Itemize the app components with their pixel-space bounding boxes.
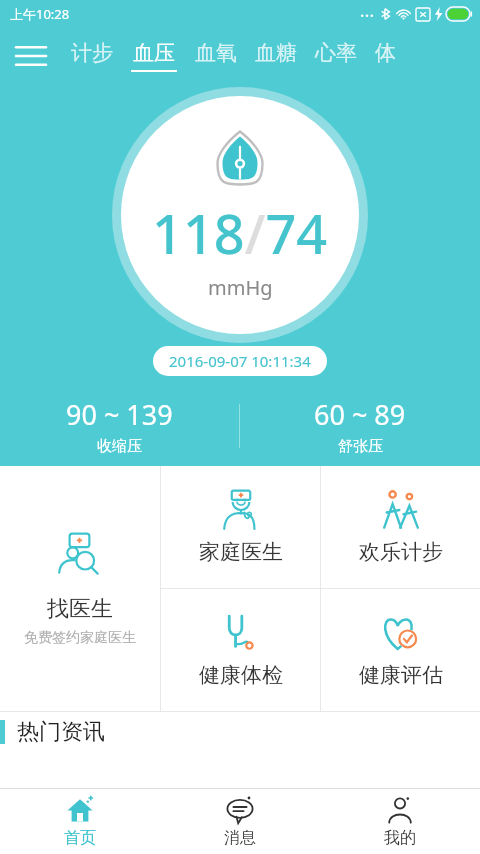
- button[interactable]: 健康评估: [321, 589, 480, 711]
- staticText: 家庭医生: [199, 539, 283, 565]
- staticText: 舒张压: [338, 437, 383, 456]
- staticText: 血压: [133, 40, 175, 66]
- button[interactable]: Menu: [0, 28, 62, 84]
- staticText: 免费签约家庭医生: [24, 629, 136, 647]
- staticText: 90 ~ 139: [66, 396, 173, 433]
- button[interactable]: 体: [375, 28, 396, 84]
- staticText: 2016-09-07 10:11:34: [169, 351, 311, 371]
- button[interactable]: 计步: [71, 28, 113, 84]
- button[interactable]: 热门资讯: [0, 712, 480, 752]
- staticText: 118/74: [152, 196, 328, 270]
- staticText: 血氧: [195, 40, 237, 66]
- staticText: 首页: [64, 828, 96, 848]
- staticText: 体: [375, 40, 396, 66]
- staticText: 健康评估: [359, 662, 443, 688]
- button[interactable]: 首页: [0, 789, 160, 854]
- button[interactable]: 血氧: [195, 28, 237, 84]
- staticText: 60 ~ 89: [314, 396, 406, 433]
- staticText: 上午10:28: [10, 5, 70, 23]
- button[interactable]: 消息: [160, 789, 320, 854]
- staticText: 计步: [71, 40, 113, 66]
- staticText: 心率: [315, 40, 357, 66]
- button[interactable]: 欢乐计步: [321, 466, 480, 588]
- button[interactable]: 健康体检: [161, 589, 320, 711]
- button[interactable]: 血糖: [255, 28, 297, 84]
- staticText: 热门资讯: [17, 718, 105, 746]
- button[interactable]: 血压: [131, 28, 177, 84]
- button[interactable]: 心率: [315, 28, 357, 84]
- button[interactable]: 家庭医生: [161, 466, 320, 588]
- staticText: 消息: [224, 828, 256, 848]
- staticText: 收缩压: [97, 437, 142, 456]
- staticText: 欢乐计步: [359, 539, 443, 565]
- button[interactable]: 找医生: [0, 466, 160, 711]
- staticText: 我的: [384, 828, 416, 848]
- button[interactable]: 我的: [320, 789, 480, 854]
- staticText: mmHg: [208, 274, 273, 301]
- staticText: 找医生: [47, 595, 113, 623]
- staticText: 健康体检: [199, 662, 283, 688]
- staticText: 血糖: [255, 40, 297, 66]
